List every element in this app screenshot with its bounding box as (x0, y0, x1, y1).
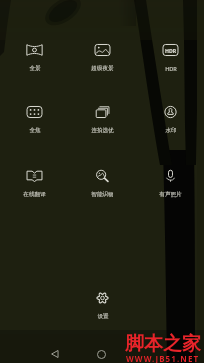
button[interactable]: 水印 (158, 105, 183, 135)
staticText: WWW.JB51.NET (126, 353, 200, 363)
button[interactable]: HDR (158, 43, 183, 74)
staticText: 全景 (29, 65, 41, 72)
staticText: 连拍选优 (91, 127, 114, 134)
staticText: 全焦 (29, 127, 41, 134)
button[interactable]: Back (38, 345, 71, 363)
button[interactable]: 全焦 (22, 105, 47, 135)
button[interactable]: 连拍选优 (87, 105, 118, 135)
button[interactable]: Recent apps (133, 345, 166, 363)
staticText: 超级夜景 (91, 65, 114, 72)
staticText: 有声照片 (159, 191, 182, 198)
staticText: 设置 (97, 313, 109, 320)
staticText: 在线翻译 (23, 191, 46, 198)
staticText: 脚本之家 (125, 332, 201, 353)
button[interactable]: Home (85, 345, 118, 363)
staticText: 水印 (165, 127, 177, 134)
button[interactable]: 有声照片 (155, 169, 186, 199)
button[interactable]: 全景 (22, 43, 47, 73)
staticText: HDR (165, 65, 177, 73)
staticText: HDR (165, 47, 177, 54)
button[interactable]: 在线翻译 (19, 169, 50, 199)
button[interactable]: 智能识物 (87, 169, 118, 199)
staticText: 智能识物 (91, 191, 114, 198)
button[interactable]: 设置 (90, 291, 115, 321)
button[interactable]: 超级夜景 (87, 43, 118, 73)
